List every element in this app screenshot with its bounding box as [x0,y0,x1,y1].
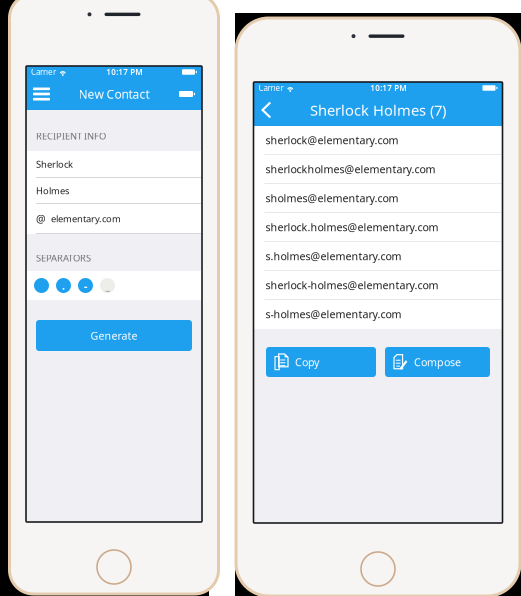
staticText: @ [36,212,46,226]
staticText: elementary.com [51,212,121,225]
button[interactable]: Compose [385,347,490,377]
staticText: Carrier [258,83,283,93]
staticText: _ [105,278,109,293]
staticText: sherlock.holmes@elementary.com [265,220,438,234]
button[interactable]: Separator . [56,278,71,293]
staticText: - [84,278,87,293]
button[interactable]: No separator [34,278,49,293]
staticText: 10:17 PM [370,83,406,93]
staticText: sherlock-holmes@elementary.com [265,278,438,292]
button[interactable]: sherlockholmes@elementary.com [253,155,502,184]
button[interactable]: Battery [172,85,202,103]
staticText: . [62,278,65,293]
button[interactable]: s.holmes@elementary.com [253,242,502,271]
button[interactable]: @ [26,204,202,234]
button[interactable]: Menu [26,81,57,106]
staticText: sherlockholmes@elementary.com [265,162,435,176]
button[interactable]: Separator _ [100,278,115,293]
button[interactable]: s-holmes@elementary.com [253,300,502,329]
button[interactable]: sherlock.holmes@elementary.com [253,213,502,242]
button[interactable]: sholmes@elementary.com [253,184,502,213]
button[interactable]: Copy [266,347,376,377]
button[interactable]: Holmes [26,178,202,204]
staticText: sherlock@elementary.com [265,133,398,147]
staticText: Generate [90,328,137,343]
button[interactable]: sherlock@elementary.com [253,126,502,155]
staticText: Compose [414,355,461,369]
staticText: New Contact [78,86,149,102]
staticText: Sherlock [36,158,73,170]
staticText: Sherlock Holmes (7) [310,100,446,120]
button[interactable]: Sherlock [26,151,202,178]
staticText: sholmes@elementary.com [265,191,398,205]
button[interactable]: Generate [36,320,192,351]
staticText: s-holmes@elementary.com [265,307,401,321]
staticText: s.holmes@elementary.com [265,249,401,263]
button[interactable]: Back [253,95,279,124]
button[interactable]: sherlock-holmes@elementary.com [253,271,502,300]
staticText: SEPARATORS [36,252,91,264]
staticText: RECIPIENT INFO [36,130,106,142]
staticText: Holmes [36,184,69,197]
staticText: Carrier [31,67,56,77]
staticText: 10:17 PM [106,67,142,77]
staticText: Copy [295,355,319,369]
button[interactable]: Separator - [78,278,93,293]
